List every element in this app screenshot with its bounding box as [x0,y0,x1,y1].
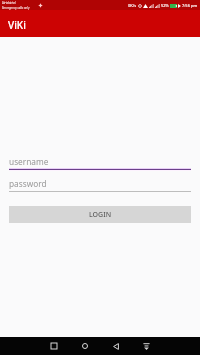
button[interactable]: password [9,175,191,195]
staticText: 52% [161,3,169,8]
staticText: username [9,156,49,167]
staticText: ViKi [8,18,26,32]
button[interactable]: Hide keyboard [131,337,162,355]
staticText: LOGIN [89,210,112,220]
button[interactable]: Back [100,337,131,355]
staticText: password [9,178,47,189]
button[interactable]: LOGIN [9,206,191,223]
staticText: 0K/s [128,3,137,8]
button[interactable]: Recent apps [38,337,69,355]
staticText: Airtelairtel [2,1,16,5]
button[interactable]: username [9,152,191,172]
staticText: 7:56 pm [182,3,198,8]
button[interactable]: Home [69,337,100,355]
staticText: Emergency calls only [2,6,30,10]
